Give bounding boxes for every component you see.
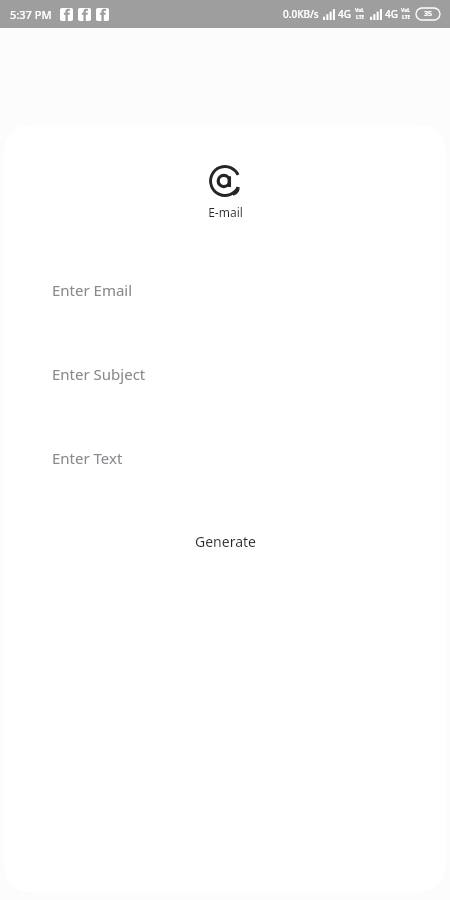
staticText: Enter Email [52, 280, 133, 300]
staticText: 5:37 PM [10, 7, 52, 22]
staticText: LTE [402, 14, 411, 21]
button[interactable]: Enter Email [38, 261, 412, 318]
staticText: LTE [356, 14, 365, 21]
staticText: 35 [424, 9, 433, 19]
staticText: VoL [401, 7, 411, 14]
staticText: E-mail [208, 204, 243, 220]
button[interactable]: Enter Text [38, 429, 412, 486]
staticText: Enter Subject [52, 364, 146, 384]
staticText: VoL [355, 7, 365, 14]
button[interactable]: Generate [177, 516, 273, 566]
staticText: 4G [385, 7, 398, 21]
button[interactable]: E-mail [195, 145, 255, 238]
staticText: 0.0KB/s [283, 7, 319, 21]
staticText: 4G [338, 7, 351, 21]
staticText: Enter Text [52, 448, 123, 468]
staticText: Generate [195, 532, 256, 551]
button[interactable]: Enter Subject [38, 345, 412, 402]
